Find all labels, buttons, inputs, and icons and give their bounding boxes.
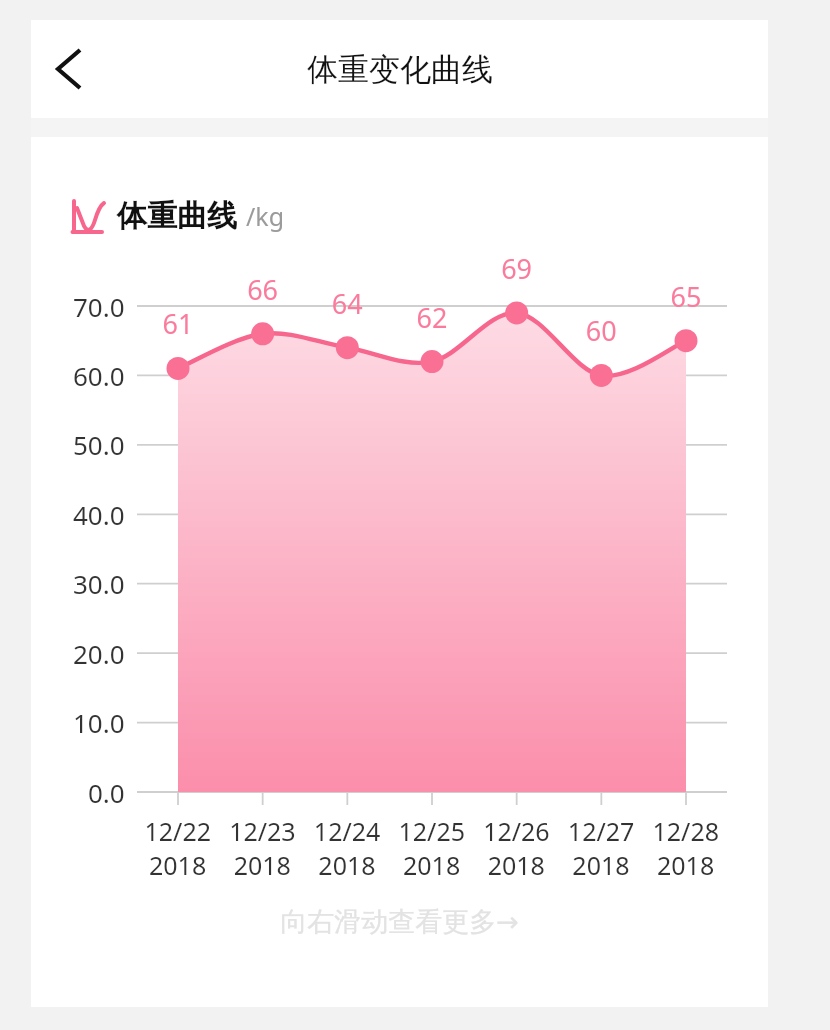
staticText: 向右滑动查看更多→ xyxy=(31,905,768,939)
staticText: /kg xyxy=(246,199,285,233)
staticText: 体重变化曲线 xyxy=(307,50,493,89)
button[interactable]: Back xyxy=(31,31,107,107)
staticText: 体重曲线 xyxy=(117,197,237,235)
